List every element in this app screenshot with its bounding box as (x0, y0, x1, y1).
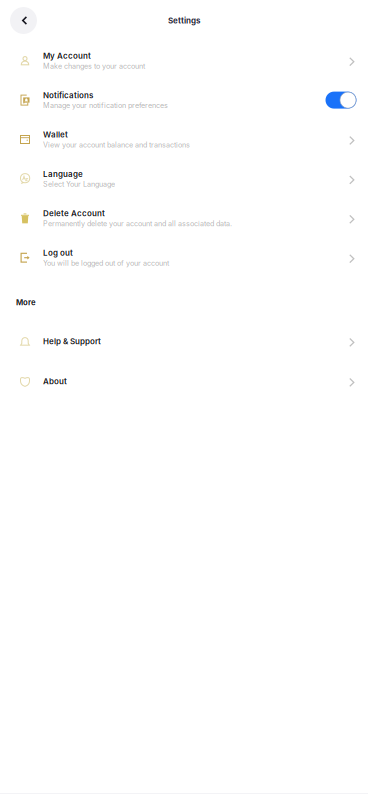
staticText: More (16, 298, 36, 307)
staticText: Wallet (43, 130, 68, 139)
staticText: Language (43, 169, 83, 179)
staticText: You will be logged out of your account (43, 259, 169, 267)
staticText: Make changes to your account (43, 62, 145, 70)
button[interactable]: Delete Account (0, 199, 368, 238)
button[interactable]: Language (0, 159, 368, 199)
staticText: Delete Account (43, 209, 105, 218)
button[interactable]: My Account (0, 41, 368, 80)
staticText: Log out (43, 248, 73, 258)
staticText: Manage your notification preferences (43, 101, 168, 110)
button[interactable]: Notifications (0, 80, 368, 120)
button[interactable]: Help & Support (0, 321, 368, 361)
button[interactable]: Back (10, 7, 37, 34)
staticText: Select Your Language (43, 180, 115, 189)
staticText: View your account balance and transactio… (43, 140, 190, 149)
button[interactable]: Log out (0, 238, 368, 277)
staticText: Settings (168, 16, 200, 25)
staticText: My Account (43, 51, 91, 61)
button[interactable]: About (0, 361, 368, 401)
staticText: Permanently delete your account and all … (43, 219, 232, 228)
staticText: Notifications (43, 90, 93, 100)
staticText: About (43, 377, 67, 386)
staticText: Help & Support (43, 337, 101, 346)
button[interactable]: Wallet (0, 120, 368, 159)
